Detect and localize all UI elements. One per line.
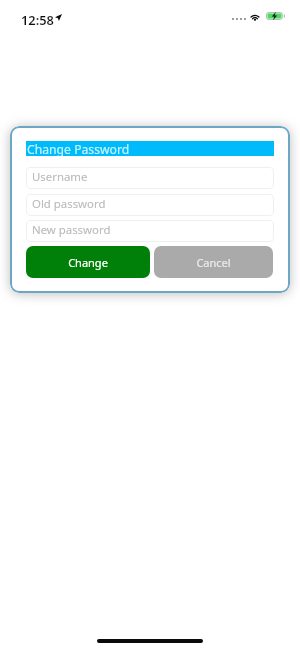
staticText: Old password <box>32 196 106 212</box>
staticText: Change Password <box>27 141 130 156</box>
button[interactable]: Change <box>26 246 150 278</box>
button[interactable]: Change Password <box>26 141 274 156</box>
staticText: Change <box>68 255 108 270</box>
button[interactable]: Username <box>26 167 274 189</box>
button[interactable]: New password <box>26 220 274 242</box>
staticText: 12:58 <box>21 11 54 28</box>
staticText: New password <box>32 222 111 238</box>
staticText: Cancel <box>196 255 231 270</box>
staticText: Username <box>32 169 88 185</box>
button[interactable]: Old password <box>26 194 274 216</box>
button[interactable]: Cancel <box>154 246 273 278</box>
